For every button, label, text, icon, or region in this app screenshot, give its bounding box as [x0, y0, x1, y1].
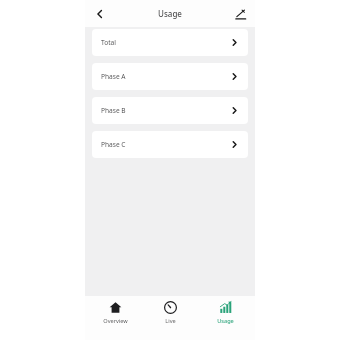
staticText: Total — [101, 38, 116, 47]
button[interactable]: Phase B — [92, 97, 248, 124]
button[interactable]: Phase A — [92, 63, 248, 90]
staticText: Phase A — [101, 72, 126, 81]
button[interactable]: Back — [89, 3, 111, 25]
button[interactable]: Overview — [90, 301, 140, 325]
staticText: Usage — [158, 8, 182, 19]
button[interactable]: Live — [145, 301, 195, 325]
button[interactable]: Usage — [200, 301, 250, 325]
staticText: Usage — [217, 317, 234, 325]
staticText: Overview — [103, 317, 128, 325]
staticText: Phase C — [101, 140, 126, 149]
button[interactable]: Phase C — [92, 131, 248, 158]
staticText: Phase B — [101, 106, 126, 115]
button[interactable]: Edit — [229, 3, 251, 25]
button[interactable]: Total — [92, 29, 248, 56]
staticText: Live — [165, 317, 176, 325]
